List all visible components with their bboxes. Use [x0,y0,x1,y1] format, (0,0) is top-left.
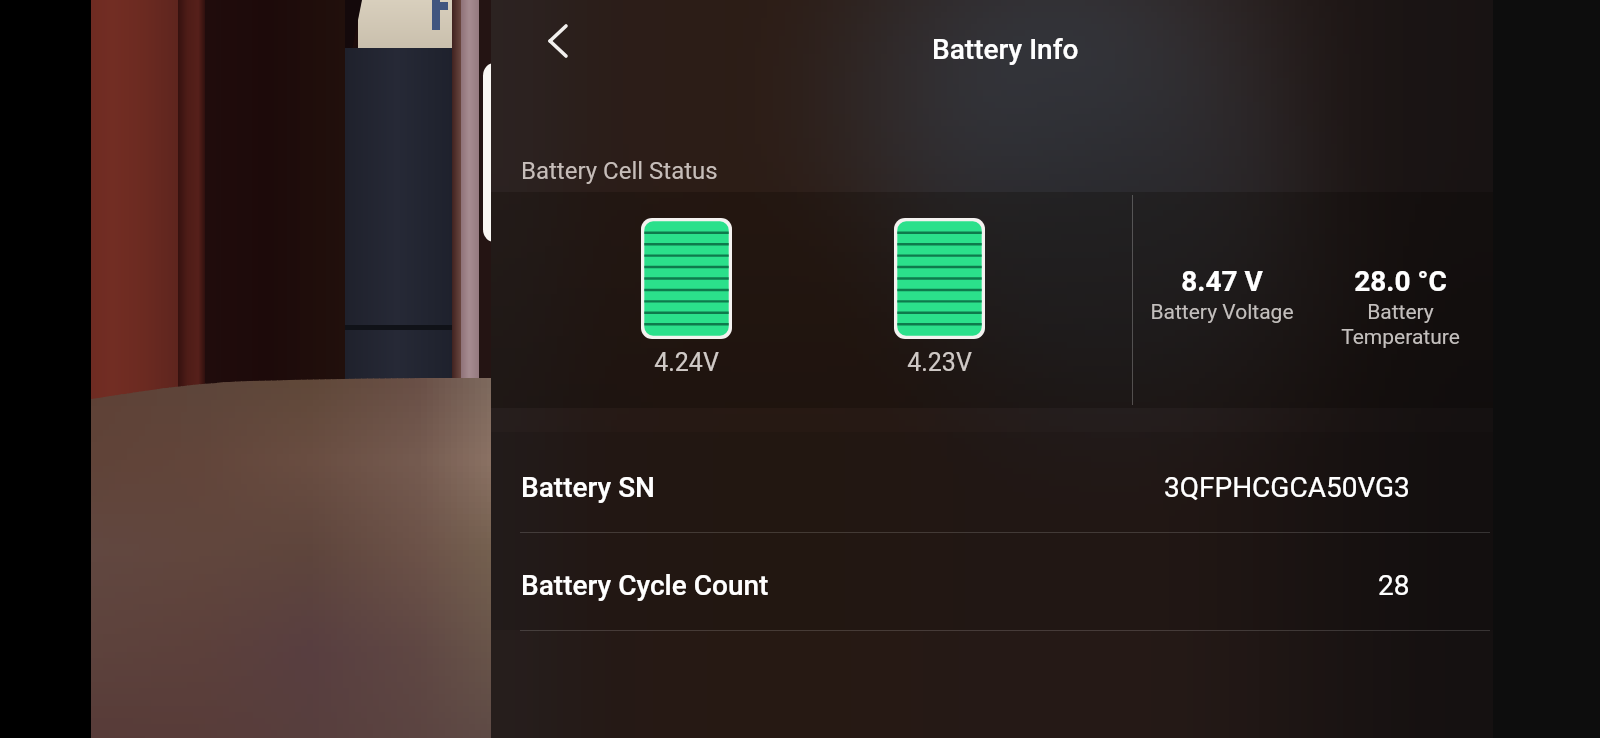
staticText: 8.47 V [1181,265,1263,298]
staticText: 4.24V [621,348,752,377]
button[interactable]: Battery SN [491,436,1493,533]
staticText: Battery Cell Status [521,157,718,185]
staticText: Battery Cycle Count [521,569,769,602]
staticText: Battery Voltage [1150,300,1294,325]
staticText: Battery Temperature [1341,300,1460,350]
button[interactable]: Back [533,16,583,66]
button[interactable]: Battery Cycle Count [491,534,1493,631]
staticText: Battery SN [521,471,656,504]
staticText: 28 [1378,569,1410,602]
staticText: 3QFPHCGCA50VG3 [1164,471,1410,504]
staticText: 4.23V [874,348,1005,377]
staticText: Battery Info [932,33,1079,66]
staticText: 28.0 °C [1354,265,1447,298]
